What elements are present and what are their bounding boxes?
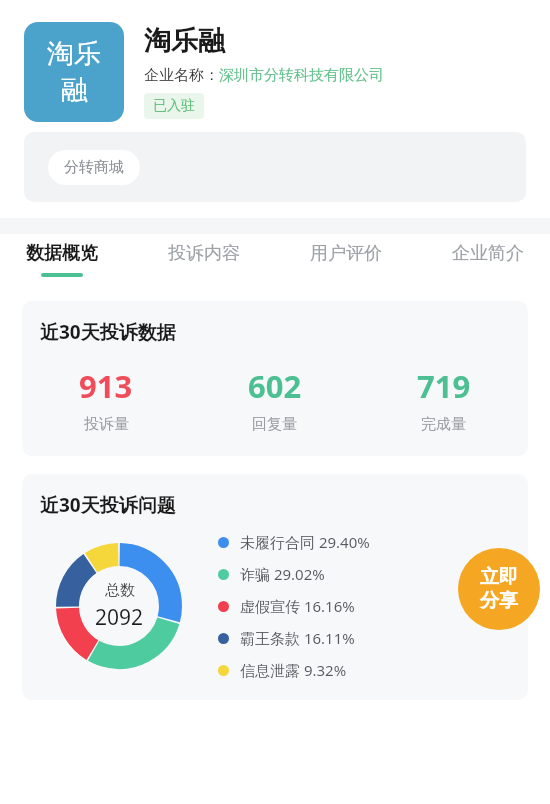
staticText: 分享 [480, 589, 518, 613]
staticText: 诈骗 29.02% [240, 564, 325, 584]
staticText: 融 [61, 73, 88, 107]
button[interactable]: 虚假宣传 16.16% [218, 596, 355, 616]
staticText: 用户评价 [310, 242, 382, 265]
staticText: 719 [417, 365, 471, 407]
button[interactable]: 诈骗 29.02% [218, 564, 325, 584]
button[interactable]: 投诉内容 [162, 234, 246, 285]
staticText: 深圳市分转科技有限公司 [219, 66, 384, 85]
staticText: 投诉内容 [168, 242, 240, 265]
button[interactable]: 立即分享 [458, 548, 540, 630]
button[interactable]: 数据概览 [20, 234, 104, 285]
staticText: 已入驻 [153, 97, 195, 115]
staticText: 近30天投诉数据 [40, 319, 176, 345]
staticText: 淘乐 [47, 37, 101, 71]
button[interactable]: 913 [22, 365, 190, 434]
staticText: 未履行合同 29.40% [240, 532, 370, 552]
staticText: 回复量 [252, 415, 297, 434]
staticText: 虚假宣传 16.16% [240, 596, 355, 616]
staticText: 霸王条款 16.11% [240, 628, 355, 648]
staticText: 完成量 [421, 415, 466, 434]
staticText: 分转商城 [64, 158, 124, 177]
button[interactable]: 淘乐融 logo [24, 22, 124, 122]
button[interactable]: 719 [359, 365, 528, 434]
button[interactable]: 分转商城 [48, 150, 140, 185]
button[interactable]: 霸王条款 16.11% [218, 628, 355, 648]
staticText: 2092 [95, 603, 144, 632]
button[interactable]: 602 [190, 365, 359, 434]
staticText: 信息泄露 9.32% [240, 660, 347, 680]
staticText: 企业名称： [144, 66, 219, 85]
staticText: 企业简介 [452, 242, 524, 265]
staticText: 近30天投诉问题 [40, 492, 176, 518]
staticText: 913 [79, 365, 133, 407]
staticText: 立即 [480, 565, 518, 589]
button[interactable]: 已入驻 [144, 93, 204, 119]
staticText: 投诉量 [84, 415, 129, 434]
staticText: 602 [248, 365, 302, 407]
button[interactable]: 企业简介 [446, 234, 530, 285]
staticText: 数据概览 [26, 242, 98, 265]
staticText: 总数 [105, 581, 135, 600]
button[interactable]: 用户评价 [304, 234, 388, 285]
staticText: 淘乐融 [144, 24, 225, 58]
button[interactable]: 信息泄露 9.32% [218, 660, 347, 680]
button[interactable]: 未履行合同 29.40% [218, 532, 370, 552]
